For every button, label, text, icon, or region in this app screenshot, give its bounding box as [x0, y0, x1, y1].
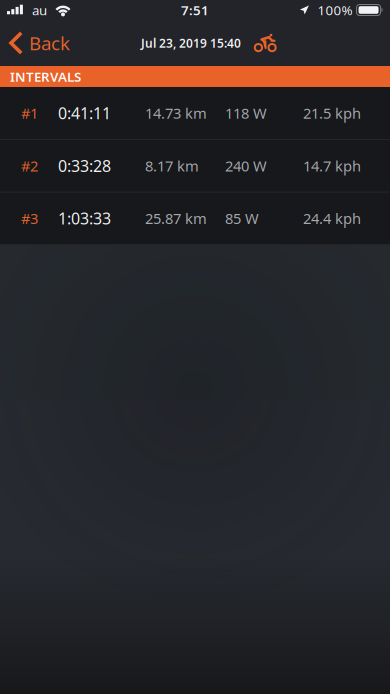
- button[interactable]: #3: [0, 192, 390, 244]
- button[interactable]: #1: [0, 87, 390, 139]
- staticText: 25.87 km: [145, 209, 207, 228]
- staticText: 1:03:33: [58, 208, 111, 229]
- staticText: 240 W: [225, 156, 267, 175]
- staticText: #3: [21, 209, 38, 228]
- staticText: au: [32, 1, 47, 19]
- button[interactable]: Back: [0, 20, 78, 66]
- staticText: 14.7 kph: [303, 156, 361, 175]
- staticText: Back: [29, 31, 70, 55]
- staticText: 21.5 kph: [303, 103, 361, 123]
- staticText: 24.4 kph: [303, 209, 361, 228]
- button[interactable]: #2: [0, 140, 390, 192]
- staticText: #2: [21, 156, 38, 175]
- staticText: 100%: [317, 1, 352, 19]
- staticText: Jul 23, 2019 15:40: [141, 35, 241, 51]
- staticText: 7:51: [181, 1, 209, 19]
- staticText: 8.17 km: [145, 156, 199, 175]
- staticText: 14.73 km: [145, 103, 207, 123]
- staticText: INTERVALS: [10, 68, 81, 85]
- staticText: #1: [21, 103, 38, 123]
- staticText: 0:41:11: [58, 102, 111, 124]
- staticText: 0:33:28: [58, 155, 111, 176]
- staticText: 118 W: [225, 103, 267, 123]
- staticText: 85 W: [225, 209, 259, 228]
